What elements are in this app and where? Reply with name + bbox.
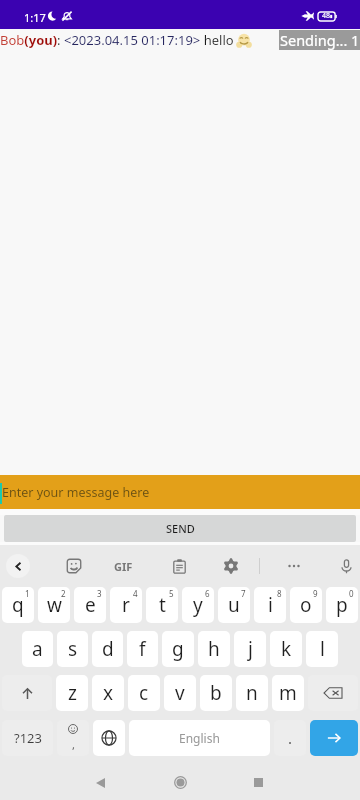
staticText: c (139, 680, 149, 706)
button[interactable]: b (200, 675, 232, 711)
button[interactable]: i (254, 587, 286, 623)
button[interactable]: a (22, 631, 53, 667)
staticText: e (85, 592, 96, 618)
button[interactable]: Keyboard settings (219, 554, 243, 578)
staticText: 8 (277, 588, 282, 599)
staticText: 9 (313, 588, 318, 599)
button[interactable]: f (127, 631, 158, 667)
staticText: 7 (241, 588, 246, 599)
button[interactable]: l (306, 631, 338, 667)
button[interactable]: Back (78, 765, 122, 800)
staticText: y (193, 592, 203, 618)
staticText: 2 (61, 588, 66, 599)
staticText: g (172, 636, 184, 662)
staticText: 48 (322, 11, 331, 21)
staticText: q (12, 592, 24, 618)
staticText: r (122, 592, 130, 618)
button[interactable]: z (56, 675, 88, 711)
staticText: u (228, 592, 240, 618)
staticText: GIF (114, 559, 133, 574)
button[interactable]: k (270, 631, 302, 667)
button[interactable]: y (182, 587, 214, 623)
button[interactable]: Voice input (334, 554, 358, 578)
staticText: j (248, 636, 253, 662)
button[interactable]: c (128, 675, 160, 711)
button[interactable]: j (234, 631, 266, 667)
staticText: p (336, 592, 348, 618)
button[interactable]: Backspace (308, 675, 358, 711)
button[interactable]: GIF (112, 554, 134, 578)
button[interactable]: o (290, 587, 322, 623)
button[interactable]: . (274, 720, 306, 756)
button[interactable]: English (129, 720, 270, 756)
staticText: 5 (169, 588, 174, 599)
staticText: 1 (25, 588, 30, 599)
staticText: l (320, 636, 325, 662)
staticText: 1:17 (24, 10, 46, 25)
staticText: a (32, 636, 43, 662)
staticText: d (102, 636, 114, 662)
button[interactable]: q (2, 587, 34, 623)
staticText: Enter your message here (2, 484, 150, 501)
staticText: s (68, 636, 78, 662)
staticText: SEND (166, 521, 195, 536)
button[interactable]: Close keyboard toolbar (6, 554, 30, 578)
staticText: 6 (205, 588, 210, 599)
staticText: . (288, 728, 293, 748)
button[interactable]: s (57, 631, 88, 667)
button[interactable]: d (92, 631, 123, 667)
staticText: , (72, 737, 75, 752)
staticText: z (68, 680, 77, 706)
button[interactable]: m (272, 675, 304, 711)
button[interactable]: n (236, 675, 268, 711)
button[interactable]: p (326, 587, 358, 623)
button[interactable]: Change language (93, 720, 125, 756)
staticText: 3 (97, 588, 102, 599)
button[interactable]: h (198, 631, 230, 667)
staticText: w (47, 592, 62, 618)
button[interactable]: g (162, 631, 194, 667)
button[interactable]: t (146, 587, 178, 623)
staticText: 4 (133, 588, 138, 599)
staticText: n (246, 680, 258, 706)
staticText: Sending... 1 (280, 30, 360, 50)
button[interactable]: SEND (4, 515, 356, 542)
staticText: English (179, 730, 220, 746)
staticText: o (300, 592, 312, 618)
staticText: k (281, 636, 292, 662)
button[interactable]: x (92, 675, 124, 711)
button[interactable]: u (218, 587, 250, 623)
staticText: t (159, 592, 166, 618)
staticText: 0 (349, 588, 354, 599)
staticText: v (175, 680, 185, 706)
staticText: m (279, 680, 297, 706)
staticText: h (208, 636, 220, 662)
button[interactable]: Recent apps (236, 765, 280, 800)
staticText: b (210, 680, 222, 706)
button[interactable]: Clipboard (167, 554, 191, 578)
button[interactable]: More options (282, 554, 306, 578)
staticText: x (103, 680, 114, 706)
button[interactable]: w (38, 587, 70, 623)
button[interactable]: e (74, 587, 106, 623)
button[interactable]: Home (158, 765, 202, 800)
button[interactable]: Send (310, 720, 358, 756)
staticText: i (268, 592, 273, 618)
button[interactable]: ?123 (2, 720, 53, 756)
button[interactable]: Emoji (57, 720, 89, 756)
staticText: Bob(you): <2023.04.15 01:17:19> hello (0, 31, 237, 49)
button[interactable]: v (164, 675, 196, 711)
button[interactable]: Shift (2, 675, 52, 711)
button[interactable]: r (110, 587, 142, 623)
staticText: f (139, 636, 146, 662)
button[interactable]: Stickers (62, 554, 86, 578)
button[interactable]: Enter your message here (0, 475, 360, 509)
staticText: ?123 (14, 729, 42, 747)
